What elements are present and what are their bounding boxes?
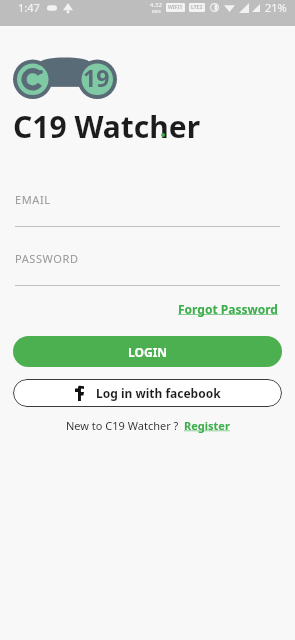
staticText: 19 <box>83 62 110 93</box>
button[interactable]: Log in with facebook <box>13 379 282 407</box>
staticText: WIFI1 <box>168 4 183 11</box>
staticText: PASSWORD <box>15 251 79 266</box>
staticText: LOGIN <box>128 344 168 360</box>
staticText: Log in with facebook <box>96 385 221 401</box>
staticText: C19 Watcher <box>13 106 201 147</box>
staticText: EMAIL <box>15 192 51 207</box>
staticText: 4.32 <box>150 1 162 9</box>
staticText: Register <box>184 418 230 433</box>
staticText: LTE2 <box>191 4 203 11</box>
button[interactable]: Register <box>184 418 230 433</box>
button[interactable]: LOGIN <box>13 336 282 367</box>
staticText: KB/S <box>152 9 161 14</box>
button[interactable]: Forgot Password <box>176 299 280 319</box>
staticText: 1:47 <box>18 0 40 15</box>
staticText: Forgot Password <box>178 301 278 317</box>
staticText: 21% <box>265 0 287 15</box>
staticText: New to C19 Watcher ? <box>66 418 179 433</box>
